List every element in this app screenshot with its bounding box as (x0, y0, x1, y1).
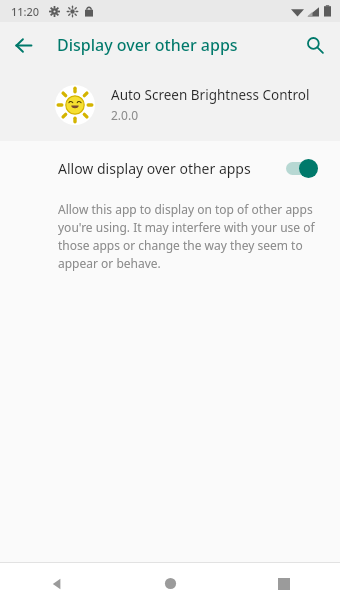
button[interactable]: Search (298, 28, 332, 62)
staticText: Auto Screen Brightness Control (111, 86, 310, 104)
button[interactable]: Navigate up (6, 28, 40, 62)
staticText: Allow this app to display on top of othe… (58, 201, 324, 272)
button[interactable]: Recent apps (227, 563, 340, 604)
button[interactable]: Home (114, 563, 227, 604)
button[interactable]: Allow display over other apps (0, 141, 340, 195)
staticText: 11:20 (11, 4, 40, 19)
staticText: Display over other apps (57, 34, 238, 56)
button[interactable]: Auto Screen Brightness Control (0, 68, 340, 141)
staticText: Allow display over other apps (58, 159, 284, 178)
button[interactable]: Back (0, 563, 114, 604)
staticText: 2.0.0 (111, 107, 139, 123)
